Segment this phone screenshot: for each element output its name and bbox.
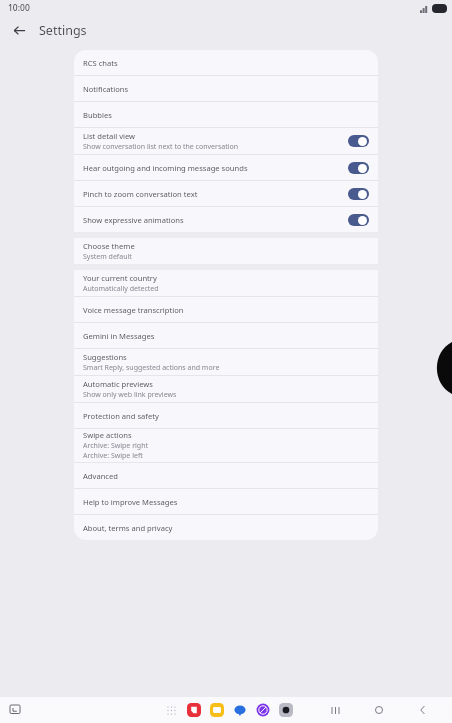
- staticText: 10:00: [8, 2, 30, 14]
- button[interactable]: Home: [370, 701, 388, 719]
- staticText: Suggestions: [83, 352, 127, 362]
- button[interactable]: Back: [6, 17, 32, 43]
- staticText: Bubbles: [83, 110, 112, 120]
- staticText: Show expressive animations: [83, 215, 184, 225]
- staticText: Automatically detected: [83, 284, 159, 294]
- staticText: RCS chats: [83, 58, 118, 68]
- button[interactable]: Help to improve Messages: [74, 489, 378, 514]
- staticText: Pinch to zoom conversation text: [83, 189, 198, 199]
- button[interactable]: Pinch to zoom conversation text: [348, 188, 369, 200]
- button[interactable]: List detail view: [74, 128, 378, 154]
- staticText: Protection and safety: [83, 411, 159, 421]
- button[interactable]: All apps: [163, 702, 179, 718]
- button[interactable]: Browser: [255, 702, 271, 718]
- staticText: Voice message transcription: [83, 305, 184, 315]
- button[interactable]: Hear outgoing and incoming message sound…: [348, 162, 369, 174]
- button[interactable]: Voice message transcription: [74, 297, 378, 322]
- staticText: List detail view: [83, 131, 136, 141]
- staticText: Settings: [39, 22, 87, 39]
- staticText: Your current country: [83, 273, 157, 283]
- button[interactable]: About, terms and privacy: [74, 515, 378, 540]
- staticText: Smart Reply, suggested actions and more: [83, 363, 220, 373]
- button[interactable]: Show expressive animations: [348, 214, 369, 226]
- staticText: Gemini in Messages: [83, 331, 155, 341]
- staticText: System default: [83, 252, 132, 262]
- button[interactable]: Gemini in Messages: [74, 323, 378, 348]
- staticText: Archive: Swipe right: [83, 441, 148, 451]
- staticText: Hear outgoing and incoming message sound…: [83, 163, 248, 173]
- button[interactable]: Chat bubble: [232, 702, 248, 718]
- staticText: Swipe actions: [83, 430, 132, 440]
- button[interactable]: Hear outgoing and incoming message sound…: [74, 155, 378, 180]
- staticText: Choose theme: [83, 241, 135, 251]
- button[interactable]: Advanced: [74, 463, 378, 488]
- button[interactable]: Choose theme: [74, 238, 378, 264]
- button[interactable]: Recents: [326, 701, 344, 719]
- button[interactable]: Notifications: [74, 76, 378, 101]
- button[interactable]: RCS chats: [74, 50, 378, 75]
- staticText: Notifications: [83, 84, 129, 94]
- button[interactable]: Camera: [278, 702, 294, 718]
- staticText: Show only web link previews: [83, 390, 177, 400]
- button[interactable]: Suggestions: [74, 349, 378, 375]
- button[interactable]: List detail view: [348, 135, 369, 147]
- button[interactable]: Back: [414, 701, 432, 719]
- button[interactable]: Messages: [186, 702, 202, 718]
- button[interactable]: Capture: [6, 701, 24, 719]
- button[interactable]: Show expressive animations: [74, 207, 378, 232]
- button[interactable]: Your current country: [74, 270, 378, 296]
- button[interactable]: Swipe actions: [74, 429, 378, 462]
- staticText: Show conversation list next to the conve…: [83, 142, 239, 152]
- staticText: Advanced: [83, 471, 118, 481]
- button[interactable]: Automatic previews: [74, 376, 378, 402]
- button[interactable]: Notes: [209, 702, 225, 718]
- button[interactable]: Pinch to zoom conversation text: [74, 181, 378, 206]
- button[interactable]: Protection and safety: [74, 403, 378, 428]
- staticText: Help to improve Messages: [83, 497, 178, 507]
- staticText: Archive: Swipe left: [83, 451, 143, 461]
- staticText: About, terms and privacy: [83, 523, 173, 533]
- staticText: Automatic previews: [83, 379, 153, 389]
- button[interactable]: Bubbles: [74, 102, 378, 127]
